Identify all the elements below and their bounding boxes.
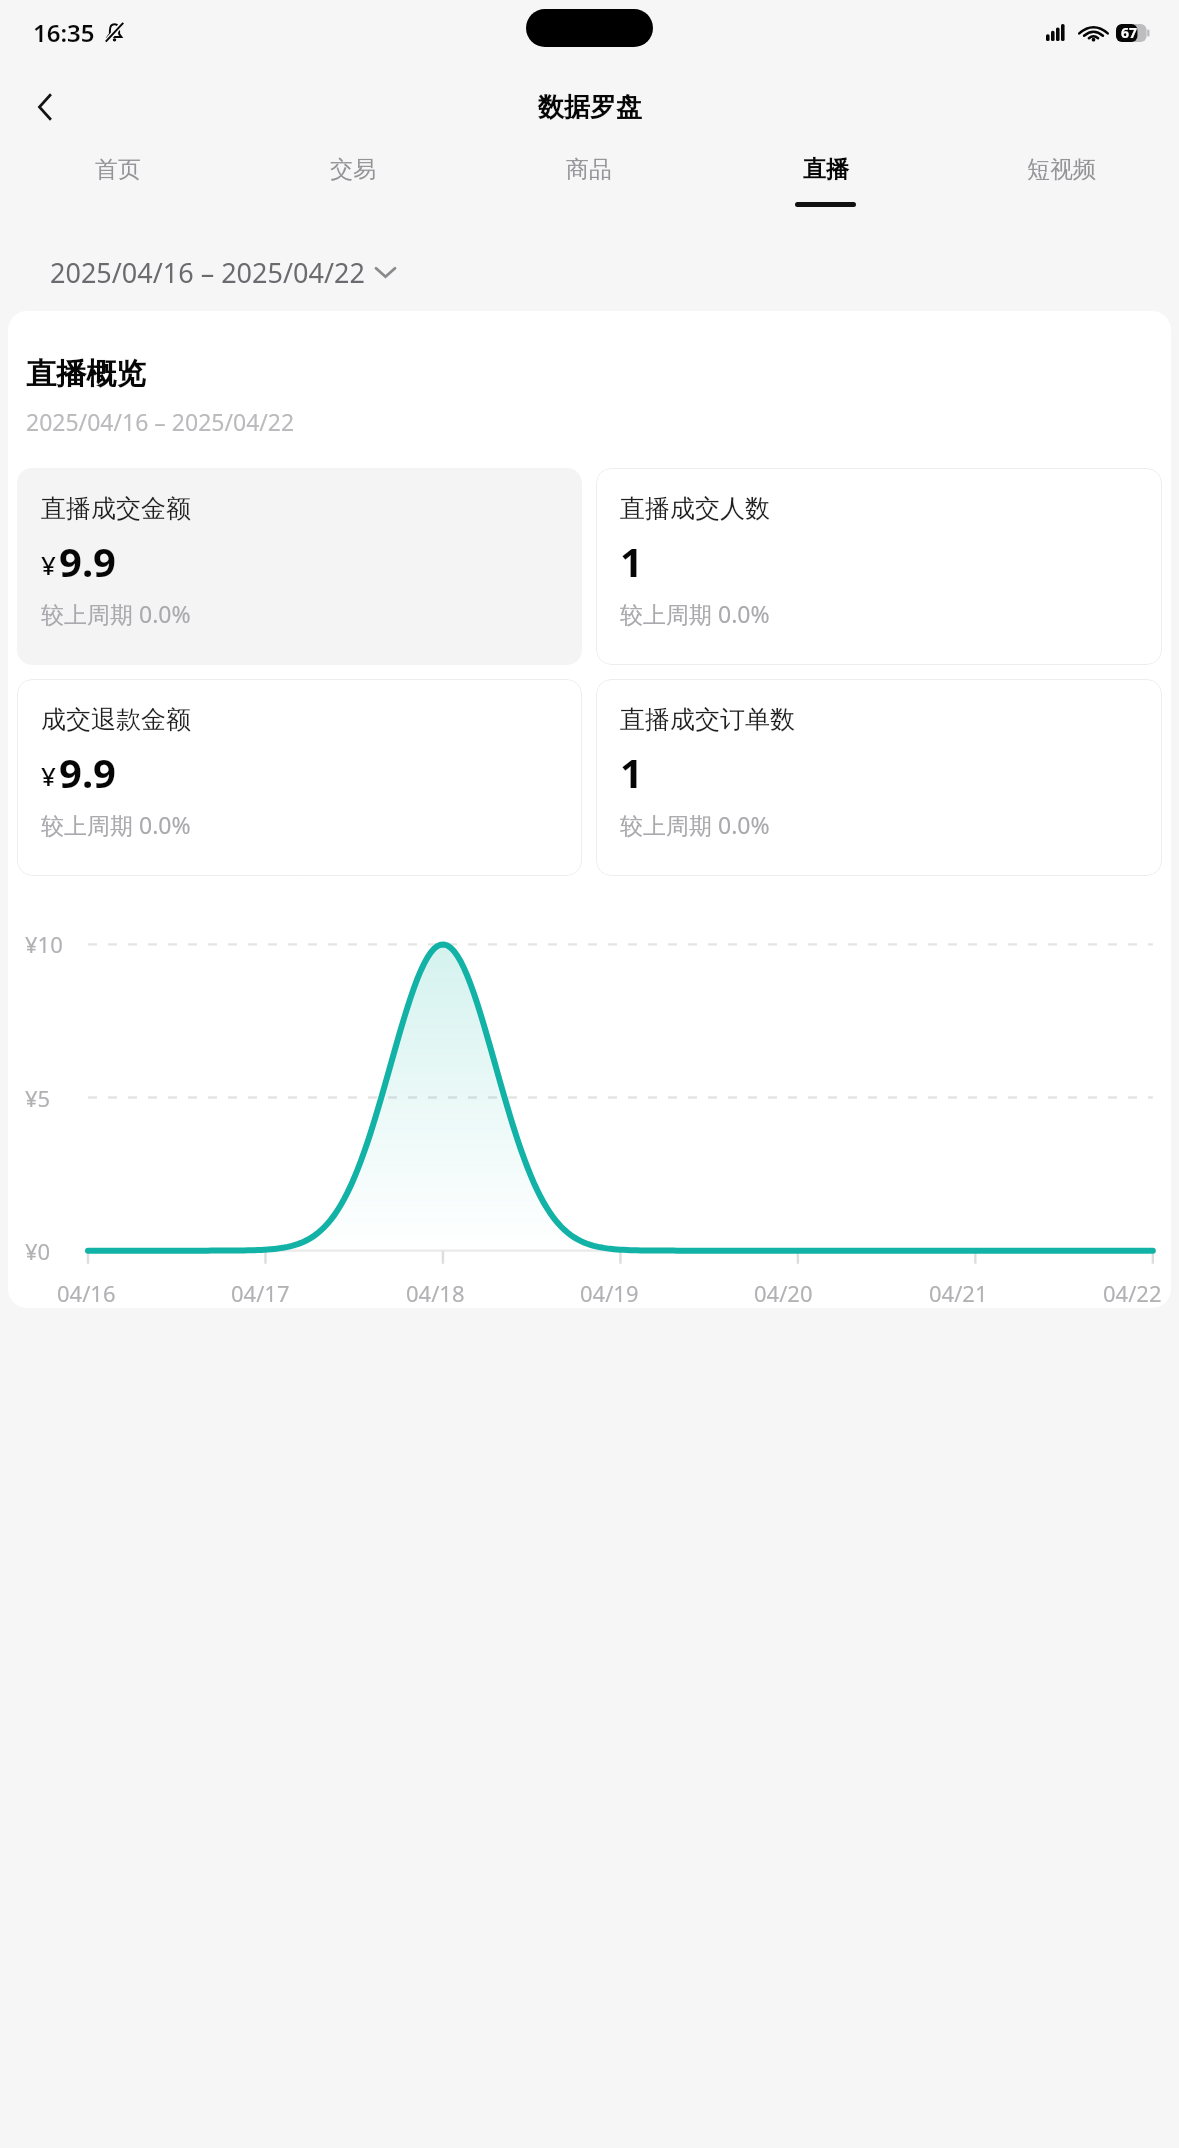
staticText: 04/20: [754, 1278, 813, 1308]
staticText: 1: [620, 534, 643, 588]
button[interactable]: 直播成交人数: [596, 468, 1162, 665]
staticText: ¥: [41, 547, 56, 582]
staticText: 16:35: [33, 16, 95, 49]
staticText: 商品: [566, 155, 612, 184]
staticText: 成交退款金额: [41, 704, 191, 735]
staticText: 04/21: [929, 1278, 988, 1308]
staticText: 04/17: [231, 1278, 290, 1308]
staticText: 较上周期 0.0%: [620, 809, 770, 840]
staticText: 较上周期 0.0%: [620, 598, 770, 629]
staticText: 04/22: [1103, 1278, 1162, 1308]
staticText: 9.9: [59, 534, 116, 588]
button[interactable]: 短视频: [943, 150, 1179, 232]
staticText: 首页: [95, 155, 141, 184]
staticText: ¥0: [25, 1236, 51, 1266]
staticText: 2025/04/16 – 2025/04/22: [50, 254, 365, 291]
staticText: 直播成交金额: [41, 493, 191, 524]
staticText: 直播成交订单数: [620, 704, 795, 735]
staticText: 9.9: [59, 745, 116, 799]
staticText: ¥5: [25, 1083, 51, 1113]
button[interactable]: 直播: [707, 150, 943, 232]
staticText: 04/19: [580, 1278, 639, 1308]
button[interactable]: 商品: [471, 150, 707, 232]
staticText: 较上周期 0.0%: [41, 809, 191, 840]
staticText: 67: [1121, 23, 1138, 42]
button[interactable]: Back: [16, 78, 74, 136]
staticText: ¥: [41, 758, 56, 793]
button[interactable]: 首页: [0, 150, 235, 232]
staticText: 直播成交人数: [620, 493, 770, 524]
staticText: 短视频: [1027, 155, 1096, 184]
button[interactable]: 直播成交金额: [17, 468, 582, 665]
staticText: 04/16: [57, 1278, 116, 1308]
button[interactable]: 成交退款金额: [17, 679, 582, 876]
staticText: 直播概览: [26, 355, 146, 393]
button[interactable]: 交易: [235, 150, 471, 232]
staticText: 直播: [803, 155, 849, 184]
staticText: 04/18: [406, 1278, 465, 1308]
button[interactable]: 直播成交订单数: [596, 679, 1162, 876]
staticText: 1: [620, 745, 643, 799]
staticText: ¥10: [25, 929, 63, 959]
staticText: 交易: [330, 155, 376, 184]
staticText: 较上周期 0.0%: [41, 598, 191, 629]
button[interactable]: 2025/04/16 – 2025/04/22: [50, 254, 395, 291]
staticText: 2025/04/16 – 2025/04/22: [26, 406, 295, 437]
staticText: 数据罗盘: [538, 91, 642, 124]
